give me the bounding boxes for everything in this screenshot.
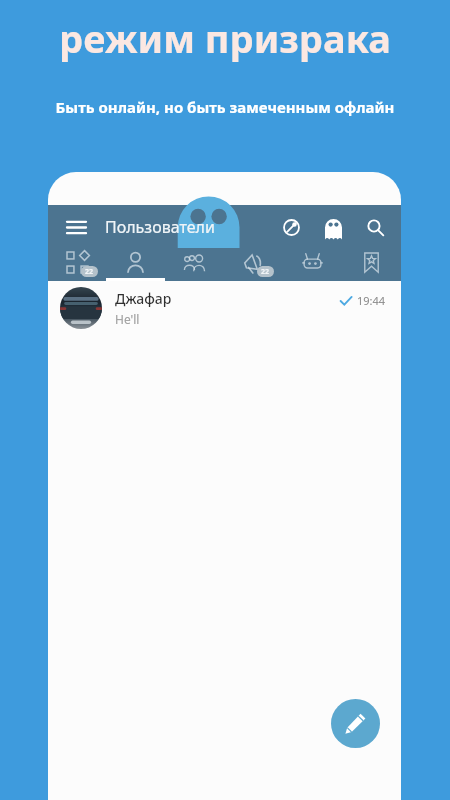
- button[interactable]: Режим призрака: [319, 213, 347, 241]
- staticText: 22: [85, 267, 94, 277]
- staticText: Пользователи: [105, 216, 215, 238]
- button[interactable]: Джафар: [48, 281, 401, 334]
- staticText: He'll: [115, 311, 140, 327]
- staticText: режим призрака: [0, 12, 450, 64]
- staticText: 22: [261, 267, 270, 277]
- button[interactable]: Боты: [283, 248, 342, 281]
- button[interactable]: Пользователи: [106, 248, 165, 281]
- button[interactable]: Каналы: [224, 248, 283, 281]
- button[interactable]: Поиск: [361, 213, 389, 241]
- staticText: 19:44: [357, 293, 386, 308]
- button[interactable]: Обновить: [277, 213, 305, 241]
- button[interactable]: Меню: [62, 213, 90, 241]
- button[interactable]: Написать сообщение: [331, 699, 380, 748]
- button[interactable]: Группы: [165, 248, 224, 281]
- button[interactable]: Стикеры: [48, 248, 106, 281]
- staticText: Джафар: [115, 289, 172, 308]
- button[interactable]: Избранное: [342, 248, 401, 281]
- staticText: Быть онлайн, но быть замеченным офлайн: [0, 97, 450, 117]
